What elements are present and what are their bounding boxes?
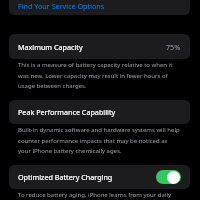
staticText: Optimized Battery Charging (18, 172, 113, 182)
staticText: To reduce battery aging, iPhone learns f… (18, 191, 181, 200)
button[interactable]: Optimized Battery Charging, on (156, 170, 181, 184)
staticText: This is a measure of battery capacity re… (18, 61, 181, 90)
button[interactable]: Find Your Service Options (9, 0, 190, 15)
button[interactable]: Peak Performance Capability (9, 100, 190, 124)
button[interactable]: Maximum Capacity (9, 34, 190, 59)
staticText: 75% (166, 42, 181, 52)
staticText: Find Your Service Options (18, 1, 105, 11)
staticText: Maximum Capacity (18, 42, 83, 52)
staticText: Built-in dynamic software and hardware s… (18, 126, 181, 155)
staticText: Peak Performance Capability (18, 107, 116, 117)
button[interactable]: Optimized Battery Charging (9, 165, 190, 189)
